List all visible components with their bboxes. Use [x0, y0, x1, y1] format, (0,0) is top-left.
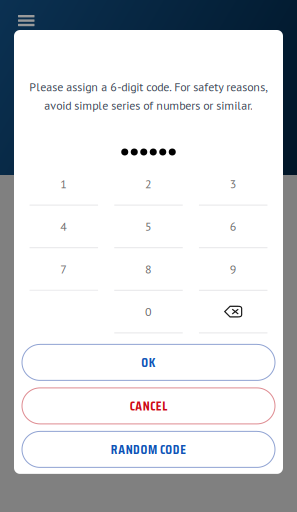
staticText: 1: [60, 176, 67, 191]
staticText: 9: [230, 261, 237, 277]
staticText: 4: [60, 219, 67, 234]
staticText: 0: [145, 304, 152, 319]
button[interactable]: OK: [22, 344, 275, 380]
button[interactable]: 8: [114, 248, 183, 291]
button[interactable]: 3: [199, 163, 267, 206]
button[interactable]: Menu: [0, 0, 34, 26]
button[interactable]: 6: [199, 206, 267, 248]
button[interactable]: 5: [114, 206, 183, 248]
staticText: OK: [141, 352, 156, 373]
button[interactable]: RANDOM CODE: [22, 431, 275, 467]
button[interactable]: 1: [29, 163, 98, 206]
button[interactable]: 9: [199, 248, 267, 291]
staticText: 7: [60, 261, 67, 277]
staticText: 6: [230, 219, 237, 234]
button[interactable]: 2: [114, 163, 183, 206]
staticText: RANDOM CODE: [111, 439, 186, 460]
staticText: 5: [145, 219, 152, 234]
button[interactable]: 7: [29, 248, 98, 291]
button[interactable]: 4: [29, 206, 98, 248]
staticText: CANCEL: [130, 395, 167, 416]
staticText: 8: [145, 261, 152, 277]
button[interactable]: Delete: [199, 291, 267, 333]
button[interactable]: 0: [114, 291, 183, 333]
button[interactable]: CANCEL: [22, 388, 275, 424]
staticText: 2: [145, 176, 152, 191]
staticText: 3: [230, 176, 237, 191]
staticText: Please assign a 6-digit code. For safety…: [29, 79, 268, 113]
